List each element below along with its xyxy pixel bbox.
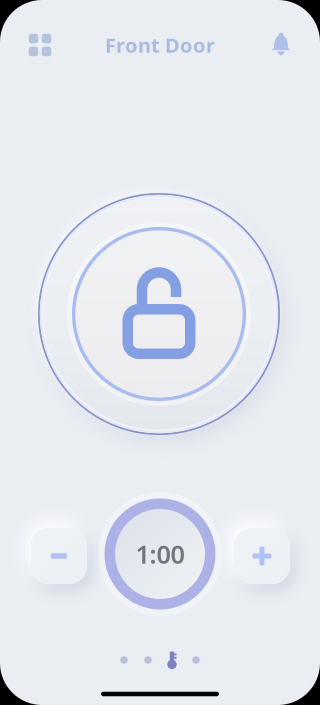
button[interactable]: Rooms <box>18 23 62 67</box>
button[interactable]: Increase time <box>229 523 295 589</box>
button[interactable]: Decrease time <box>26 523 92 589</box>
button[interactable]: Auto-lock timer, 1 minute <box>98 492 222 616</box>
button[interactable]: Unlock Front Door <box>34 189 284 439</box>
staticText: 1:00 <box>135 537 184 571</box>
staticText: Front Door <box>105 32 215 58</box>
button[interactable]: Notifications <box>259 23 303 67</box>
